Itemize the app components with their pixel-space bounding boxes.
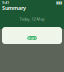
staticText: ▮▮▮ [56, 0, 62, 5]
staticText: Summary [2, 4, 26, 12]
button[interactable]: Start [27, 36, 37, 40]
staticText: Today, 12 May [19, 16, 44, 22]
staticText: Start [27, 35, 37, 41]
staticText: 9:41 [2, 0, 9, 5]
